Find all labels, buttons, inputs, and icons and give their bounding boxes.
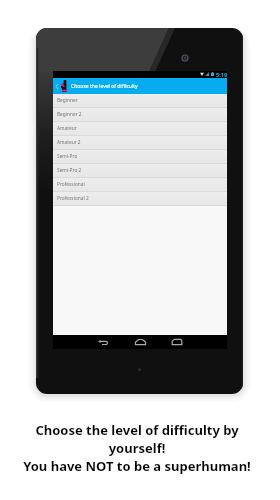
button[interactable]: Back [89, 335, 117, 349]
button[interactable]: Semi-Pro [53, 150, 227, 164]
staticText: Choose the level of difficulty by yourse… [0, 421, 277, 475]
staticText: Semi-Pro 2 [57, 167, 82, 174]
staticText: Professional [57, 181, 85, 188]
button[interactable]: Semi-Pro 2 [53, 164, 227, 178]
staticText: Amateur 2 [57, 139, 81, 146]
staticText: 5:19 [216, 71, 228, 78]
staticText: Beginner 2 [57, 111, 82, 118]
staticText: Semi-Pro [57, 153, 78, 160]
button[interactable]: Beginner 2 [53, 108, 227, 122]
button[interactable]: Navigate up [53, 78, 61, 94]
button[interactable]: Amateur [53, 122, 227, 136]
button[interactable]: Recent apps [163, 335, 191, 349]
staticText: Amateur [57, 125, 77, 132]
button[interactable]: Home [126, 335, 154, 349]
staticText: Professional 2 [57, 195, 89, 202]
staticText: Beginner [57, 97, 78, 104]
button[interactable]: Beginner [53, 94, 227, 108]
button[interactable]: Professional [53, 178, 227, 192]
button[interactable]: Amateur 2 [53, 136, 227, 150]
staticText: Choose the level of difficulty [71, 83, 138, 90]
button[interactable]: Professional 2 [53, 192, 227, 206]
